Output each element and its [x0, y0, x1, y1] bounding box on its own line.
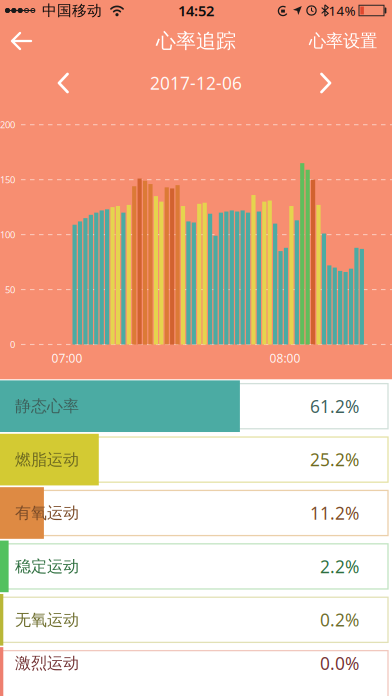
staticText: 稳定运动 — [15, 557, 79, 576]
staticText: 0 — [10, 338, 15, 351]
staticText: 心率设置 — [309, 30, 377, 52]
staticText: 200 — [0, 118, 15, 131]
staticText: 0.2% — [320, 608, 359, 631]
staticText: 0.0% — [320, 652, 359, 675]
staticText: 100 — [0, 228, 15, 241]
button[interactable] — [0, 22, 32, 60]
staticText: 2017-12-06 — [150, 71, 242, 94]
staticText: 激烈运动 — [15, 653, 79, 673]
staticText: 14% — [328, 2, 355, 19]
staticText: 无氧运动 — [15, 610, 79, 630]
staticText: 50 — [5, 283, 15, 296]
staticText: 150 — [0, 173, 15, 186]
staticText: 静态心率 — [15, 396, 79, 416]
staticText: 有氧运动 — [15, 503, 79, 523]
button[interactable] — [319, 63, 392, 102]
staticText: 08:00 — [269, 350, 300, 366]
staticText: 11.2% — [310, 501, 359, 524]
button[interactable] — [0, 63, 70, 102]
staticText: 07:00 — [51, 350, 82, 366]
staticText: 61.2% — [310, 395, 359, 418]
staticText: 中国移动 — [42, 1, 102, 19]
staticText: 14:52 — [178, 1, 214, 20]
staticText: 2.2% — [320, 555, 359, 578]
staticText: 心率追踪 — [156, 29, 236, 53]
button[interactable]: 心率设置 — [309, 19, 392, 63]
staticText: 25.2% — [310, 448, 359, 471]
staticText: 燃脂运动 — [15, 450, 79, 469]
